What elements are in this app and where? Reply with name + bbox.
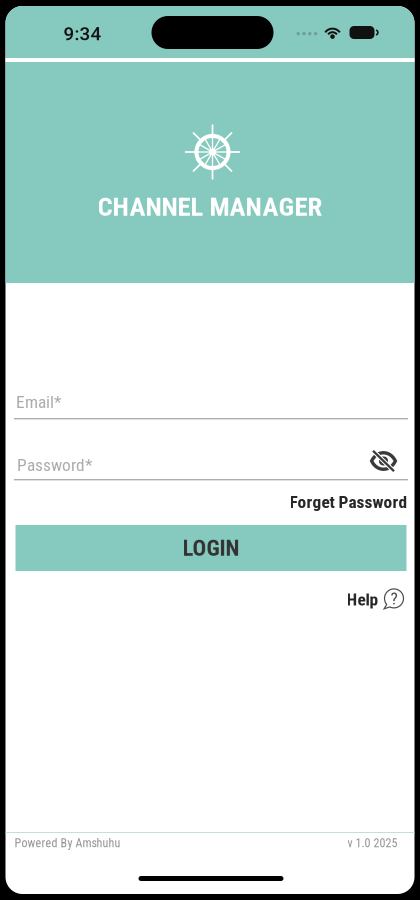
button[interactable]: LOGIN <box>15 525 406 571</box>
staticText: 9:34 <box>63 23 101 45</box>
button[interactable]: Help <box>344 584 412 614</box>
staticText: Help <box>346 589 378 610</box>
staticText: Forget Password <box>289 492 407 512</box>
staticText: Powered By Amshuhu <box>14 836 120 850</box>
staticText: Password* <box>17 455 92 475</box>
button[interactable]: Show password <box>364 444 402 478</box>
staticText: Email* <box>16 392 61 412</box>
staticText: CHANNEL MANAGER <box>97 191 322 222</box>
staticText: ? <box>390 588 397 609</box>
button[interactable]: Password <box>15 447 406 480</box>
staticText: LOGIN <box>182 535 239 561</box>
button[interactable]: Email <box>15 387 406 418</box>
staticText: v 1.0 2025 <box>347 836 397 850</box>
button[interactable]: Forget Password <box>283 485 413 513</box>
